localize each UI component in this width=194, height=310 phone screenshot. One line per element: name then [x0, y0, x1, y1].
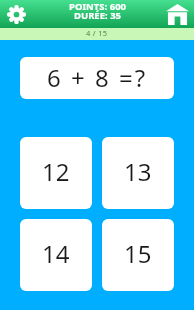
button[interactable]: 13 [102, 137, 174, 209]
staticText: 15 [124, 237, 152, 270]
staticText: 12 [42, 155, 70, 188]
staticText: POINTS: 600 DURÉE: 35 [69, 0, 126, 22]
staticText: 14 [42, 237, 70, 270]
button[interactable]: 6 + 8 =? [20, 57, 174, 99]
button[interactable]: Settings [0, 0, 33, 28]
staticText: 4 / 15 [86, 28, 108, 38]
button[interactable]: 15 [102, 219, 174, 291]
button[interactable]: 12 [20, 137, 92, 209]
button[interactable]: Home [161, 0, 194, 28]
staticText: 13 [124, 155, 152, 188]
button[interactable]: 14 [20, 219, 92, 291]
staticText: 6 + 8 =? [47, 61, 148, 94]
